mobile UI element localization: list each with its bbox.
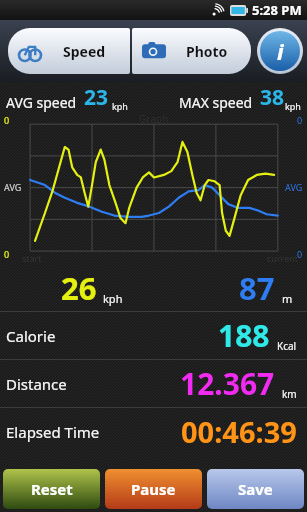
staticText: Pause (131, 479, 176, 499)
button[interactable]: Pause (105, 469, 202, 509)
staticText: kph (112, 100, 128, 112)
staticText: Photo (186, 42, 228, 61)
staticText: AVG (285, 181, 303, 193)
staticText: Graph (139, 112, 169, 126)
staticText: 0 (297, 248, 303, 260)
staticText: 0 (4, 114, 10, 126)
staticText: m (282, 291, 293, 306)
staticText: AVG speed (6, 93, 77, 112)
staticText: Reset (31, 479, 73, 499)
staticText: 38 (260, 83, 285, 112)
staticText: kph (285, 100, 301, 112)
button[interactable]: Save (207, 469, 304, 509)
staticText: 23 (84, 83, 109, 112)
staticText: Calorie (6, 326, 56, 346)
staticText: 26 (61, 267, 97, 309)
staticText: Speed (63, 42, 106, 61)
staticText: 0 (297, 114, 303, 126)
staticText: kph (103, 291, 123, 306)
button[interactable]: Speed (8, 28, 130, 74)
staticText: Save (238, 479, 273, 499)
staticText: Kcal (277, 339, 297, 353)
staticText: 00:46:39 (181, 412, 297, 451)
button[interactable]: Reset (3, 469, 100, 509)
staticText: 5:28 PM (252, 1, 302, 19)
staticText: i (277, 36, 284, 66)
staticText: 188 (218, 315, 270, 356)
staticText: Distance (6, 374, 67, 394)
staticText: 12.367 (180, 363, 275, 404)
button[interactable]: Info (260, 31, 300, 71)
staticText: Elapsed Time (6, 422, 100, 442)
staticText: 87 (239, 267, 275, 309)
staticText: current (267, 252, 299, 264)
staticText: km (282, 387, 297, 401)
staticText: 0 (4, 248, 10, 260)
staticText: MAX speed (179, 93, 253, 112)
staticText: AVG (4, 181, 22, 193)
button[interactable]: Photo (132, 28, 251, 74)
staticText: start (22, 252, 42, 264)
